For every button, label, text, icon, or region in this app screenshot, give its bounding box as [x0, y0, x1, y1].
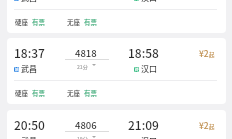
staticText: 18:37 [14, 44, 45, 61]
staticText: 武昌 [21, 63, 37, 75]
staticText: 18:58 [128, 44, 159, 61]
button[interactable]: Show stops [92, 64, 96, 66]
staticText: 硬座 [15, 88, 28, 97]
button[interactable]: 17:20 [7, 0, 226, 33]
button[interactable]: ¥2 [199, 47, 215, 59]
staticText: 4818 [75, 46, 97, 60]
staticText: 汉口 [141, 135, 157, 139]
staticText: 20:50 [14, 116, 45, 133]
staticText: 始 [15, 67, 19, 72]
staticText: 有票 [84, 88, 97, 97]
staticText: 4806 [75, 118, 97, 132]
button[interactable]: 无座 [67, 88, 97, 97]
staticText: 无座 [67, 88, 80, 97]
staticText: 起 [209, 123, 215, 131]
button[interactable]: 硬座 [15, 88, 45, 97]
button[interactable]: 硬座 [15, 17, 45, 26]
staticText: ¥2 [199, 47, 209, 59]
button[interactable]: 20:50 [7, 110, 226, 139]
staticText: 有票 [84, 17, 97, 26]
button[interactable]: 18:37 [7, 38, 226, 104]
staticText: 硬座 [15, 17, 28, 26]
staticText: 有票 [32, 88, 45, 97]
staticText: ¥2 [199, 119, 209, 131]
staticText: 21分 [77, 63, 88, 70]
staticText: 起 [209, 51, 215, 59]
staticText: 19分 [77, 135, 88, 139]
button[interactable]: ¥2 [199, 119, 215, 131]
staticText: 终 [135, 67, 139, 72]
button[interactable]: 无座 [67, 17, 97, 26]
staticText: 汉口 [141, 0, 157, 4]
staticText: 21:09 [128, 116, 159, 133]
staticText: 武昌 [21, 135, 37, 139]
staticText: 汉口 [141, 63, 157, 75]
staticText: 终 [135, 0, 139, 1]
staticText: 无座 [67, 17, 80, 26]
staticText: 始 [15, 0, 19, 1]
staticText: 有票 [32, 17, 45, 26]
staticText: 武昌 [21, 0, 37, 4]
button[interactable]: Show stops [92, 136, 96, 138]
